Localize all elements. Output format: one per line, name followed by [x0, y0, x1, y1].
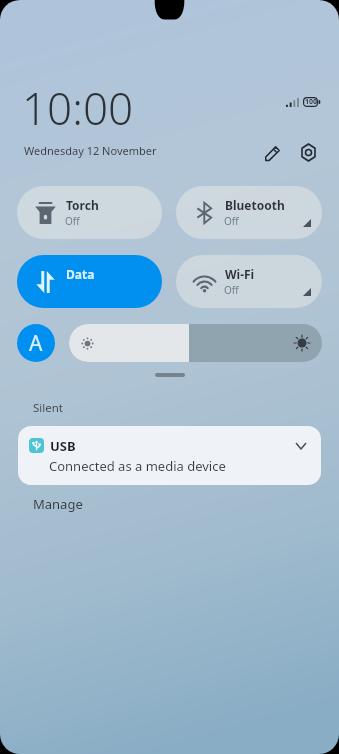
staticText: Wi-Fi	[225, 266, 255, 282]
staticText: Bluetooth	[225, 197, 285, 213]
button[interactable]: Auto brightness	[17, 324, 55, 362]
staticText: 100	[305, 97, 318, 107]
staticText: 10:00	[22, 78, 134, 138]
button[interactable]: Expand	[291, 436, 311, 456]
button[interactable]: Data	[17, 255, 162, 308]
button[interactable]: Manage	[33, 495, 83, 513]
button[interactable]: Wi-Fi	[176, 255, 322, 308]
button[interactable]: Torch	[17, 186, 162, 239]
button[interactable]: Edit	[257, 138, 287, 168]
button[interactable]: USB	[18, 426, 321, 485]
staticText: Connected as a media device	[49, 457, 226, 475]
staticText: Off	[224, 214, 239, 228]
button[interactable]: Bluetooth	[176, 186, 322, 239]
button[interactable]: Brightness	[69, 324, 322, 362]
staticText: USB	[50, 437, 76, 455]
staticText: Torch	[66, 197, 99, 213]
staticText: Silent	[33, 400, 63, 416]
staticText: Data	[66, 266, 95, 282]
staticText: A	[29, 329, 43, 358]
staticText: Wednesday 12 November	[24, 143, 157, 158]
staticText: Off	[65, 214, 80, 228]
button[interactable]: Settings	[293, 137, 323, 167]
staticText: Off	[224, 283, 239, 297]
